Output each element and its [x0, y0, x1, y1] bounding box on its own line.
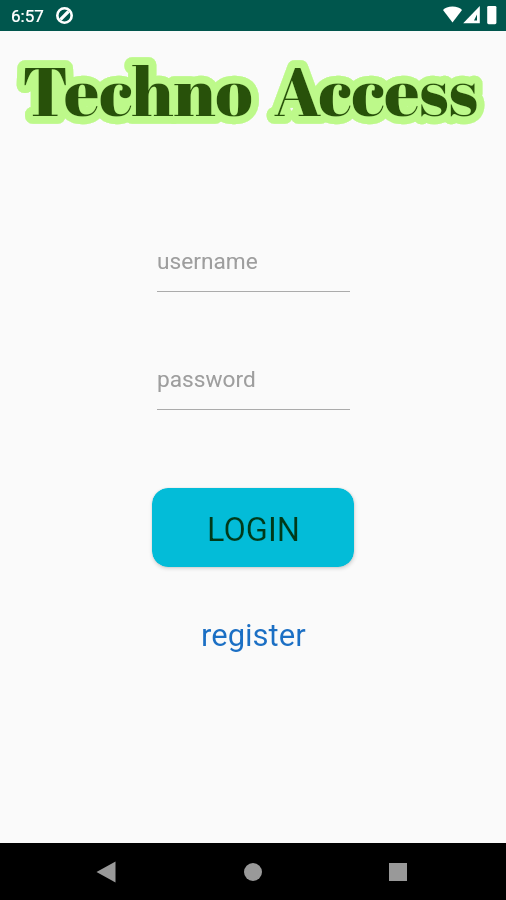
- button[interactable]: LOGIN: [152, 488, 354, 567]
- button[interactable]: Home: [221, 843, 285, 900]
- button[interactable]: register: [201, 617, 306, 653]
- staticText: username: [157, 248, 258, 275]
- button[interactable]: Back: [74, 843, 138, 900]
- button[interactable]: Recent apps: [366, 843, 430, 900]
- staticText: password: [157, 366, 256, 393]
- staticText: LOGIN: [207, 511, 300, 549]
- other: Do not disturb: [56, 7, 73, 24]
- staticText: 6:57: [11, 6, 44, 26]
